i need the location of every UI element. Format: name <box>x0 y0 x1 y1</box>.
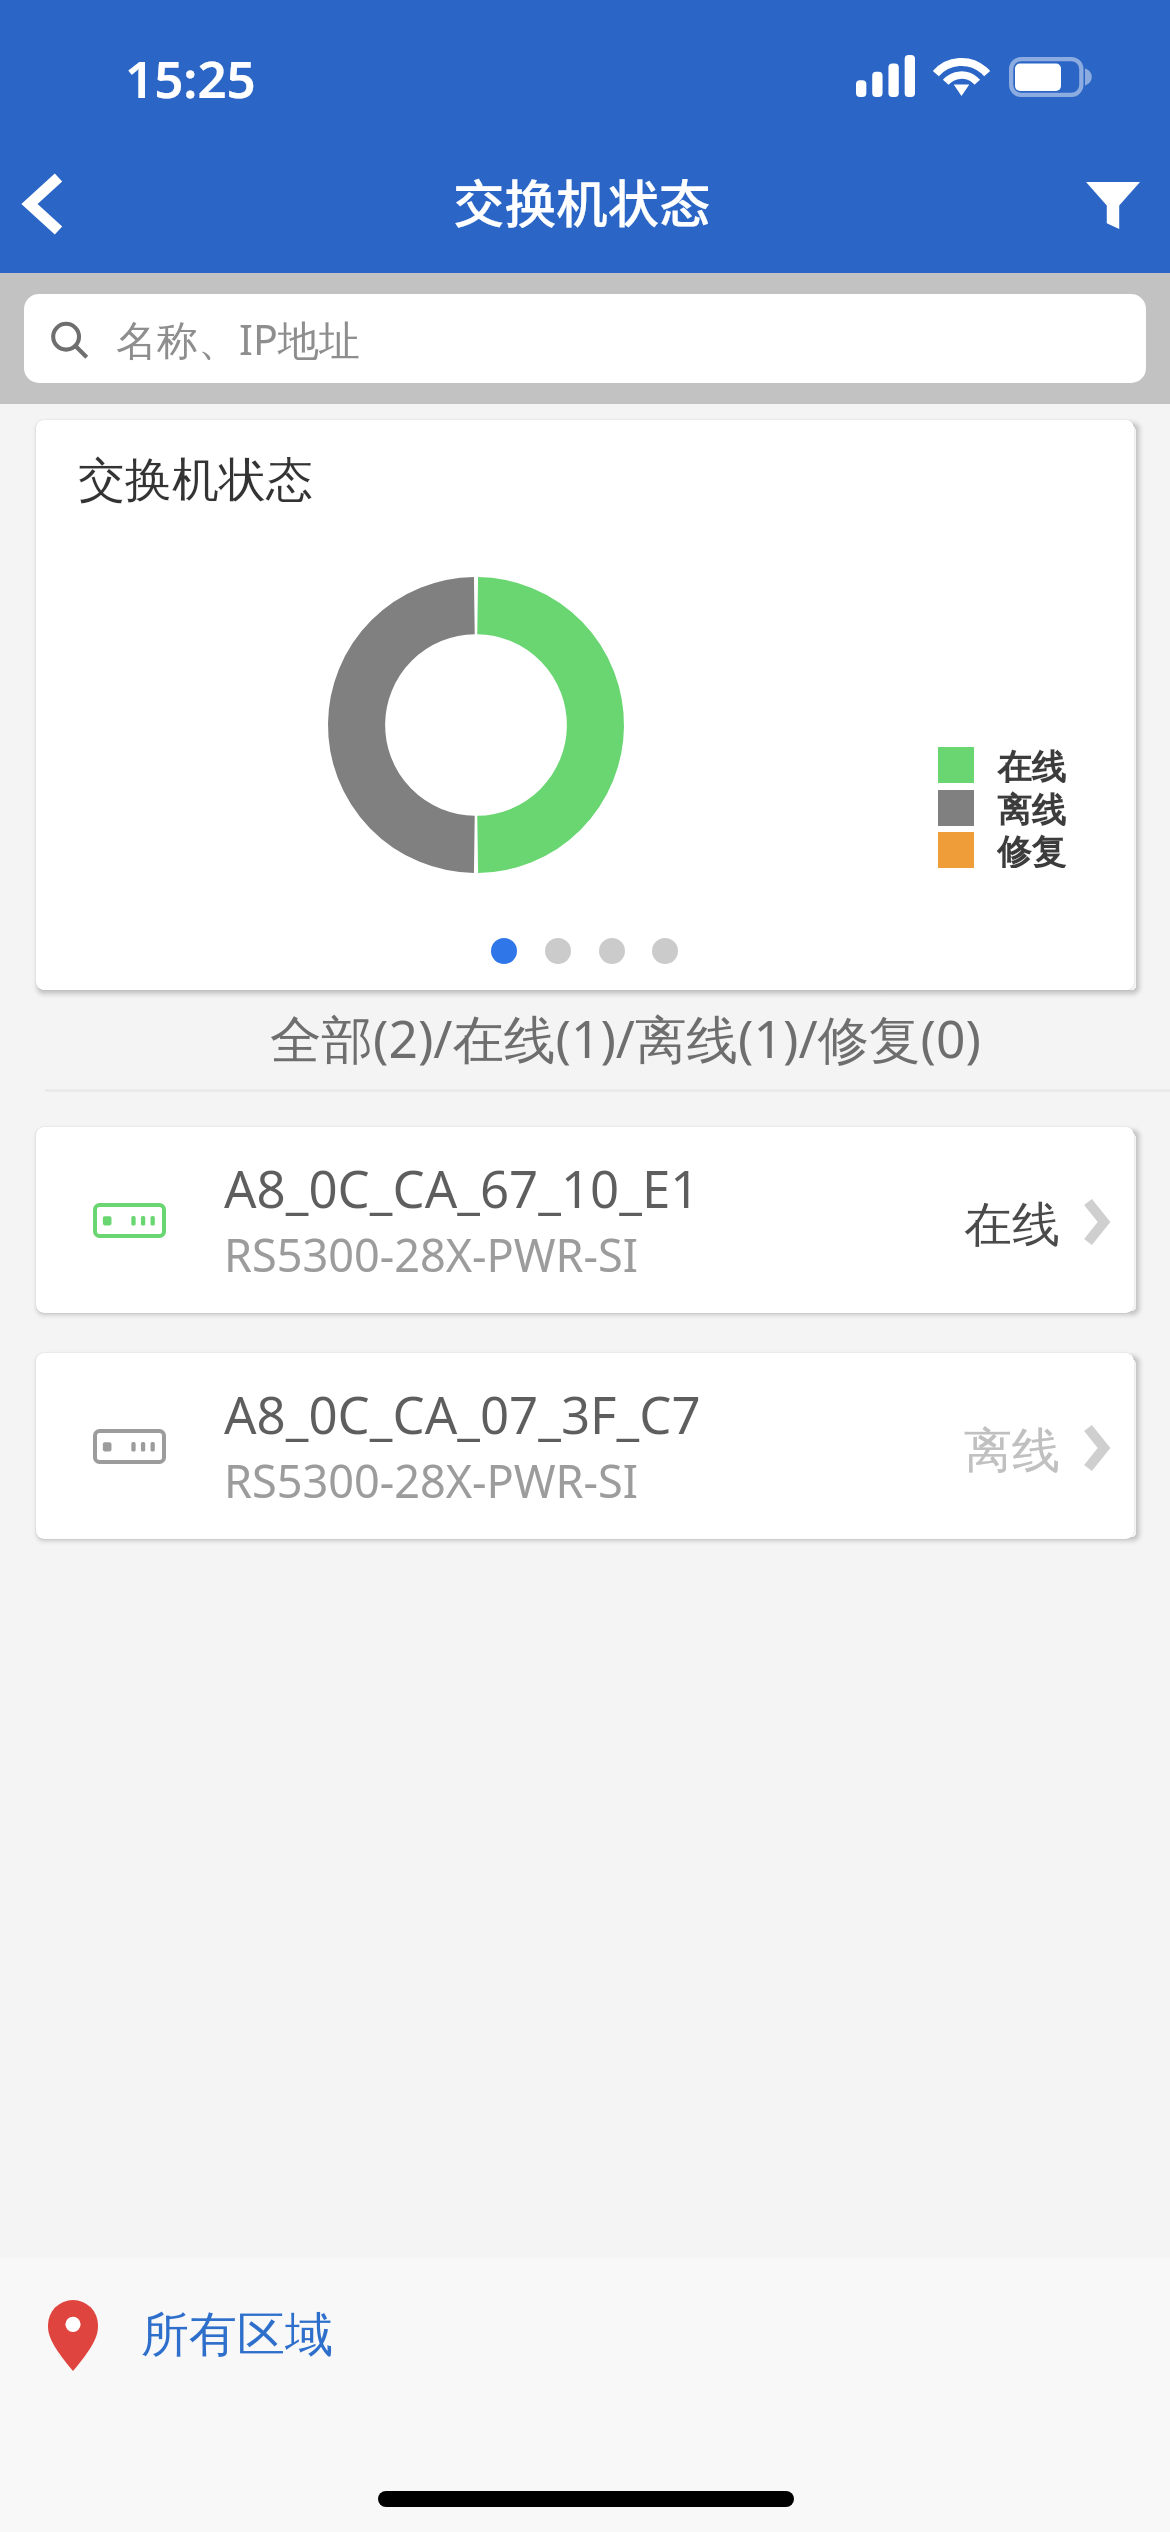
staticText: 15:25 <box>125 43 256 112</box>
button[interactable] <box>599 938 625 964</box>
button[interactable]: A8_0C_CA_67_10_E1 <box>36 1127 1134 1313</box>
button[interactable] <box>491 938 517 964</box>
button[interactable]: 名称、IP地址 <box>24 294 1146 383</box>
button[interactable] <box>545 938 571 964</box>
staticText: 全部(2)/在线(1)/离线(1)/修复(0) <box>270 1003 981 1073</box>
button[interactable]: A8_0C_CA_07_3F_C7 <box>36 1353 1134 1539</box>
staticText: 交换机状态 <box>453 163 711 238</box>
staticText: A8_0C_CA_67_10_E1 <box>224 1153 700 1222</box>
button[interactable] <box>652 938 678 964</box>
staticText: A8_0C_CA_07_3F_C7 <box>224 1379 701 1448</box>
staticText: 在线 <box>997 746 1066 783</box>
staticText: 所有区域 <box>141 2305 333 2365</box>
staticText: 在线 <box>964 1195 1060 1255</box>
staticText: 离线 <box>964 1421 1060 1481</box>
button[interactable]: 所有区域 <box>24 2280 384 2390</box>
staticText: RS5300-28X-PWR-SI <box>224 1224 639 1285</box>
staticText: 离线 <box>997 789 1066 826</box>
staticText: RS5300-28X-PWR-SI <box>224 1450 639 1511</box>
button[interactable]: Filter <box>1052 140 1170 268</box>
button[interactable]: Back <box>0 140 118 268</box>
staticText: 修复 <box>997 831 1066 868</box>
staticText: 交换机状态 <box>78 451 313 510</box>
staticText: 名称、IP地址 <box>116 311 360 367</box>
